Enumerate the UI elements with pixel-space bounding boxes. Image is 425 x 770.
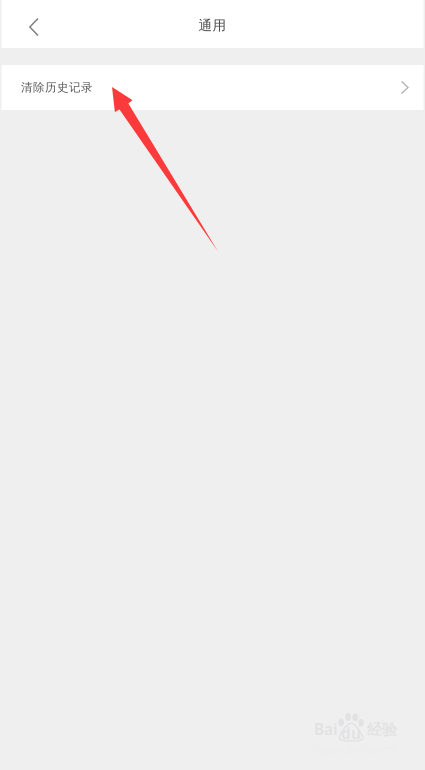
staticText: du xyxy=(341,723,361,744)
staticText: 清除历史记录 xyxy=(21,80,93,95)
staticText: Bai xyxy=(314,718,338,739)
button[interactable]: Back xyxy=(0,0,70,48)
staticText: 经验 xyxy=(367,720,397,739)
staticText: 通用 xyxy=(198,17,226,34)
button[interactable]: 清除历史记录 xyxy=(0,65,425,110)
